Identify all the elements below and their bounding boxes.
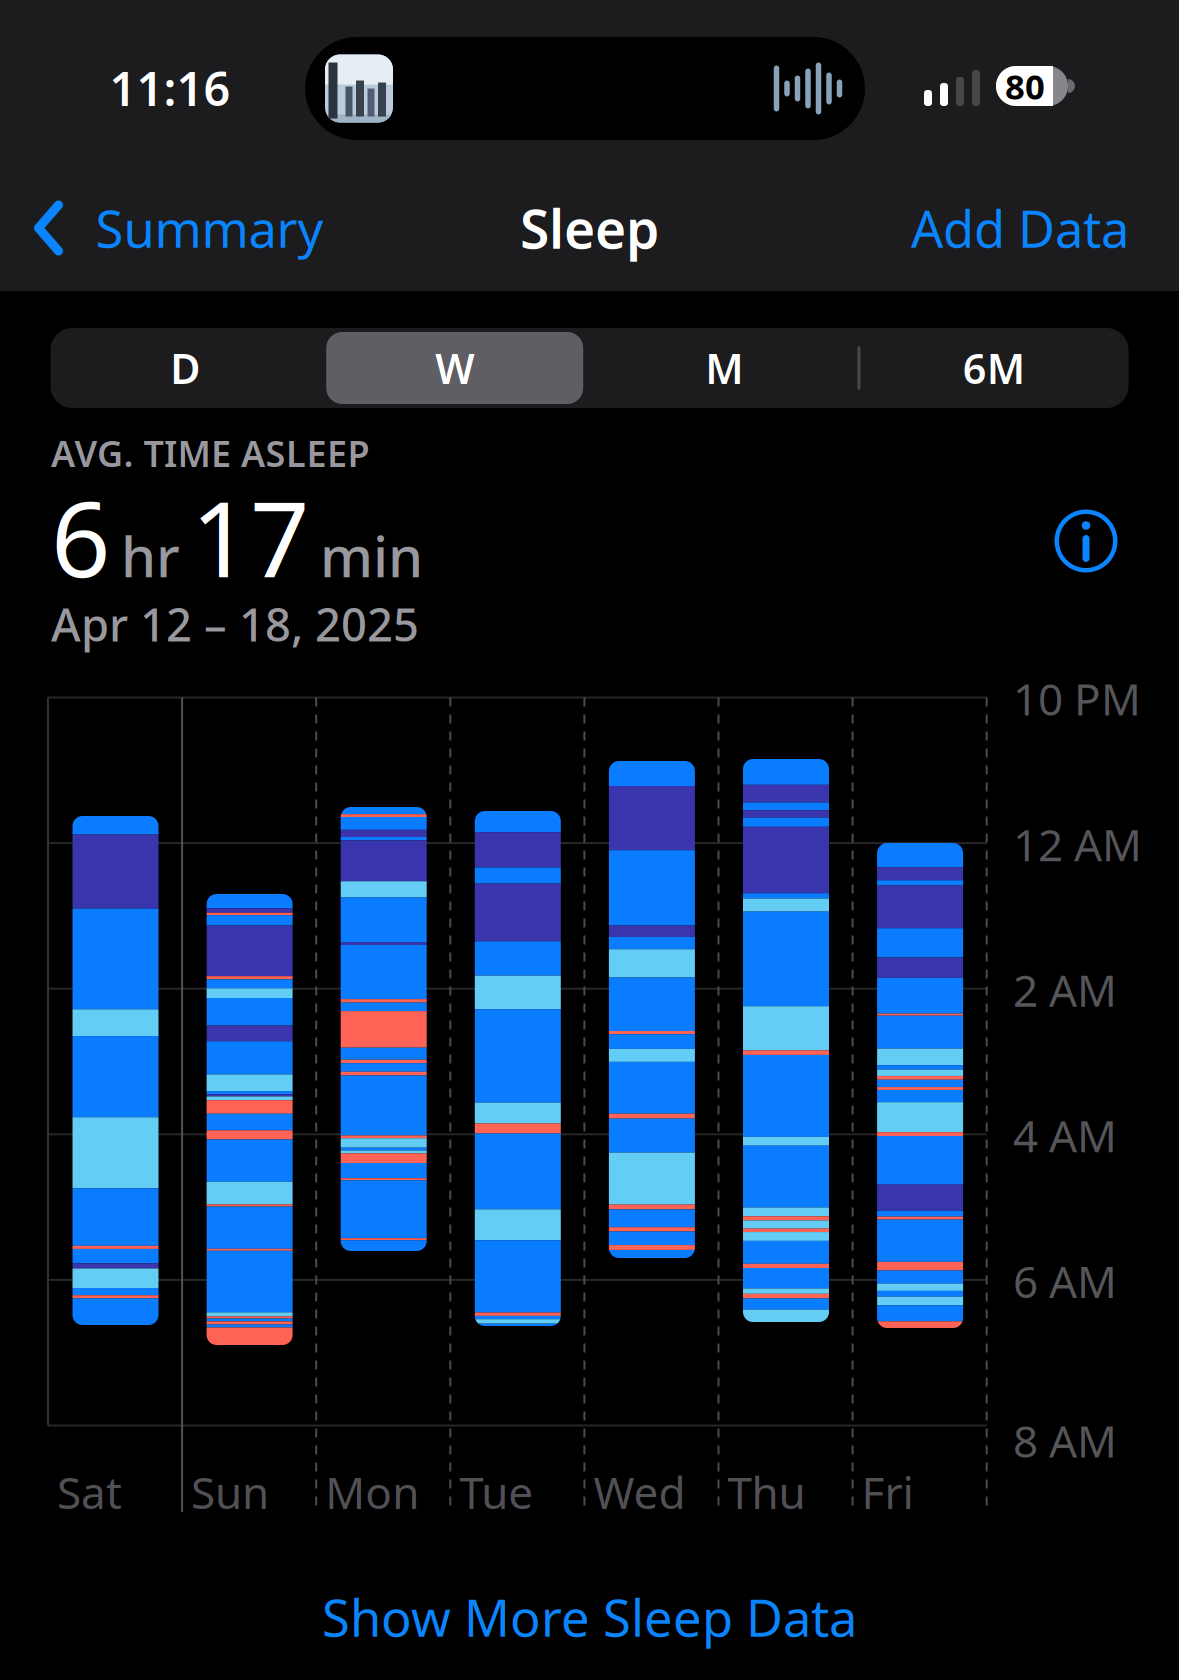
staticText: 4 AM [1013,1106,1117,1164]
staticText: 6 AM [1013,1252,1117,1310]
button[interactable] [1054,509,1118,573]
button[interactable]: D [65,332,305,404]
staticText: D [170,341,200,395]
staticText: Wed [593,1463,685,1521]
button[interactable]: M [604,332,844,404]
staticText: 17 [191,468,309,606]
button[interactable]: Add Data [809,194,1129,262]
staticText: hr [121,518,180,593]
staticText: Add Data [911,194,1129,262]
staticText: 10 PM [1013,669,1141,728]
staticText: Apr 12 – 18, 2025 [51,594,419,654]
staticText: 6M [963,341,1025,395]
staticText: Sleep [520,193,659,263]
button[interactable]: 6M [874,332,1114,404]
staticText: Mon [325,1463,419,1521]
staticText: Tue [459,1463,533,1521]
staticText: 2 AM [1013,960,1117,1019]
staticText: W [435,341,474,395]
staticText: Thu [727,1463,805,1521]
button[interactable]: Summary [34,194,323,262]
button[interactable]: W [326,332,583,404]
staticText: 6 [51,468,110,606]
staticText: 80 [1005,63,1045,109]
staticText: AVG. TIME ASLEEP [51,429,369,477]
staticText: 8 AM [1013,1411,1117,1470]
staticText: 11:16 [109,57,230,119]
staticText: Sat [57,1463,122,1521]
staticText: Sun [191,1463,269,1521]
staticText: Show More Sleep Data [322,1583,857,1651]
staticText: 12 AM [1013,815,1142,873]
staticText: M [705,341,743,395]
staticText: min [320,518,423,593]
staticText: Summary [95,194,323,262]
staticText: Fri [862,1463,914,1521]
button[interactable]: Show More Sleep Data [322,1583,857,1651]
